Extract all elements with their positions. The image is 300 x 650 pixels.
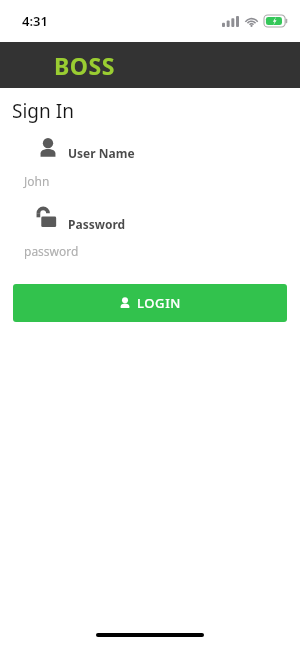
staticText: password — [24, 243, 79, 259]
staticText: BOSS — [54, 50, 115, 81]
staticText: 4:31 — [22, 12, 48, 30]
staticText: Sign In — [12, 98, 74, 124]
button[interactable]: John — [0, 170, 300, 192]
button[interactable]: password — [0, 240, 300, 262]
button[interactable]: LOGIN — [13, 284, 287, 322]
staticText: Password — [68, 216, 126, 232]
staticText: LOGIN — [137, 294, 182, 312]
staticText: User Name — [68, 145, 135, 161]
staticText: John — [24, 173, 50, 189]
